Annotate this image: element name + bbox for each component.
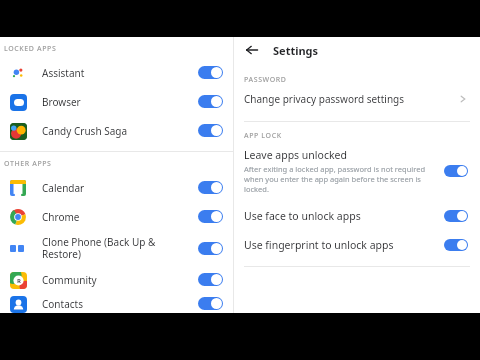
staticText: Calendar — [42, 181, 190, 195]
button[interactable]: Calendar — [0, 173, 233, 202]
staticText: Chrome — [42, 210, 190, 224]
staticText: PASSWORD — [244, 75, 287, 85]
staticText: Change privacy password settings — [244, 92, 458, 106]
button[interactable]: Toggle on — [198, 297, 223, 310]
button[interactable]: Toggle on — [198, 242, 223, 255]
staticText: Clone Phone (Back Up & Restore) — [42, 235, 190, 261]
button[interactable]: Contacts — [0, 294, 233, 313]
button[interactable]: Change privacy password settings — [234, 85, 480, 113]
staticText: Browser — [42, 95, 190, 109]
button[interactable]: Chrome — [0, 202, 233, 231]
button[interactable]: Toggle on — [198, 66, 223, 79]
button[interactable]: Toggle on — [198, 273, 223, 286]
staticText: Settings — [273, 43, 319, 58]
button[interactable]: Toggle on — [444, 210, 468, 222]
button[interactable]: Browser — [0, 87, 233, 116]
button[interactable]: Toggle on — [198, 124, 223, 137]
button[interactable]: R — [0, 265, 233, 294]
button[interactable]: Back — [243, 41, 261, 59]
staticText: Use face to unlock apps — [244, 209, 444, 223]
staticText: Community — [42, 273, 190, 287]
button[interactable]: Use fingerprint to unlock apps — [234, 234, 480, 256]
staticText: After exiting a locked app, password is … — [244, 164, 434, 194]
staticText: Use fingerprint to unlock apps — [244, 238, 444, 252]
button[interactable]: Toggle on — [198, 181, 223, 194]
button[interactable]: Candy Crush Saga — [0, 116, 233, 145]
button[interactable]: Use face to unlock apps — [234, 205, 480, 227]
staticText: R — [17, 277, 21, 285]
staticText: Candy Crush Saga — [42, 124, 190, 138]
staticText: APP LOCK — [244, 131, 282, 141]
button[interactable]: Toggle on — [444, 239, 468, 251]
button[interactable]: Clone Phone (Back Up & Restore) — [0, 231, 233, 265]
staticText: Assistant — [42, 66, 190, 80]
staticText: Contacts — [42, 297, 190, 311]
button[interactable]: Assistant — [0, 58, 233, 87]
button[interactable]: Toggle on — [444, 165, 468, 177]
button[interactable]: Toggle on — [198, 95, 223, 108]
staticText: Leave apps unlocked — [244, 148, 347, 162]
button[interactable]: Leave apps unlocked — [234, 148, 480, 194]
staticText: OTHER APPS — [4, 159, 52, 169]
staticText: LOCKED APPS — [4, 44, 57, 54]
button[interactable]: Toggle on — [198, 210, 223, 223]
